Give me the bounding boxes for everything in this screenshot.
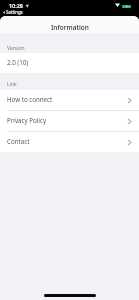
button[interactable]: 2.0 (10) xyxy=(0,53,139,73)
button[interactable]: Back to Settings xyxy=(3,9,23,15)
staticText: Link xyxy=(7,81,17,86)
staticText: Settings xyxy=(6,9,23,15)
button[interactable]: Privacy Policy xyxy=(0,111,139,131)
button[interactable]: Contact xyxy=(0,132,139,152)
staticText: 10:28 xyxy=(9,2,23,9)
staticText: Privacy Policy xyxy=(7,116,47,124)
staticText: Information xyxy=(51,23,89,32)
staticText: Contact xyxy=(7,137,30,145)
staticText: How to connect xyxy=(7,95,53,103)
staticText: Version xyxy=(7,45,25,50)
staticText: 2.0 (10) xyxy=(7,58,29,66)
button[interactable]: How to connect xyxy=(0,90,139,110)
